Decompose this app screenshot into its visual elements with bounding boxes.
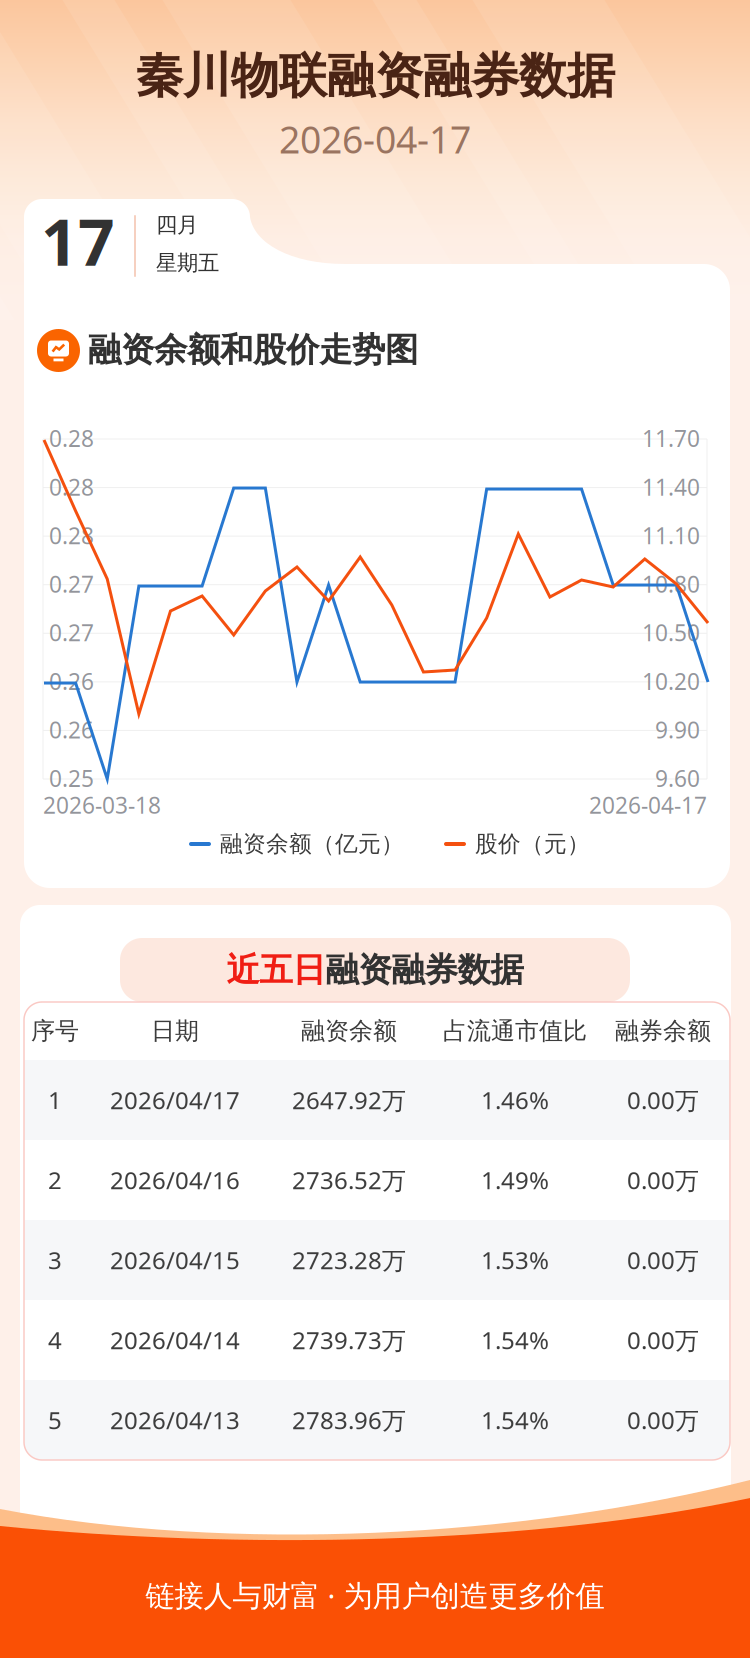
staticText: 1.54% [481,1404,549,1436]
staticText: 0.27 [49,569,94,599]
staticText: 1.54% [481,1324,549,1356]
staticText: 星期五 [156,250,219,276]
staticText: 5 [48,1404,62,1436]
staticText: 0.00万 [627,1244,699,1276]
staticText: 秦川物联融资融券数据 [135,46,615,105]
staticText: 2026/04/16 [110,1164,240,1196]
staticText: 股价（元） [475,830,590,858]
staticText: 2026-04-17 [279,114,471,164]
staticText: 序号 [31,1016,79,1046]
staticText: 0.26 [49,715,94,745]
staticText: 11.10 [642,520,700,550]
staticText: 近五日 [226,949,325,990]
staticText: 0.00万 [627,1084,699,1116]
staticText: 融资余额（亿元） [220,830,404,858]
staticText: 0.28 [49,423,94,453]
staticText: 2026/04/15 [110,1244,240,1276]
staticText: 1 [48,1084,62,1116]
staticText: 11.40 [642,472,700,502]
staticText: 2783.96万 [292,1404,406,1436]
staticText: 9.60 [655,763,700,793]
staticText: 2026-04-17 [589,790,707,820]
staticText: 0.00万 [627,1164,699,1196]
staticText: 0.26 [49,666,94,696]
staticText: 0.28 [49,520,94,550]
staticText: 日期 [151,1016,199,1046]
staticText: 2723.28万 [292,1244,406,1276]
staticText: 1.46% [481,1084,549,1116]
staticText: 0.00万 [627,1404,699,1436]
staticText: 0.25 [49,763,94,793]
staticText: 17 [41,198,115,283]
staticText: 融资余额 [301,1016,397,1046]
staticText: 2 [48,1164,62,1196]
staticText: 融资余额和股价走势图 [88,329,418,370]
staticText: 2739.73万 [292,1324,406,1356]
staticText: 2736.52万 [292,1164,406,1196]
staticText: 融券余额 [615,1016,711,1046]
staticText: 1.53% [481,1244,549,1276]
staticText: 2026/04/13 [110,1404,240,1436]
staticText: 2026/04/17 [110,1084,240,1116]
staticText: 2647.92万 [292,1084,406,1116]
staticText: 9.90 [655,715,700,745]
staticText: 10.80 [642,569,700,599]
staticText: 2026-03-18 [43,790,161,820]
staticText: 10.20 [642,666,700,696]
staticText: 占流通市值比 [443,1016,587,1046]
staticText: 0.28 [49,472,94,502]
staticText: 10.50 [642,617,700,648]
staticText: 1.49% [481,1164,549,1196]
staticText: 四月 [156,212,198,238]
staticText: 3 [48,1244,62,1276]
staticText: 4 [48,1324,62,1356]
staticText: 2026/04/14 [110,1324,240,1356]
staticText: 11.70 [642,423,700,453]
staticText: 融资融券数据 [325,949,523,990]
staticText: 链接人与财富 · 为用户创造更多价值 [145,1575,604,1614]
staticText: 0.27 [49,617,94,648]
staticText: 0.00万 [627,1324,699,1356]
